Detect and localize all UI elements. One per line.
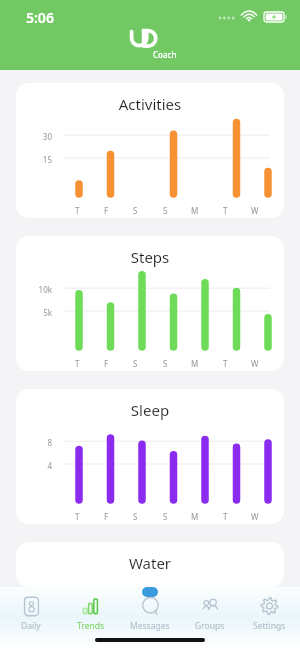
staticText: 30 — [30, 131, 52, 142]
staticText: F — [104, 205, 109, 216]
staticText: S — [133, 511, 138, 522]
staticText: T — [75, 511, 80, 522]
button[interactable]: Sleep — [16, 389, 284, 524]
staticText: Daily — [21, 620, 41, 632]
staticText: M — [191, 358, 199, 369]
staticText: W — [251, 205, 259, 216]
staticText: T — [223, 511, 228, 522]
staticText: F — [104, 358, 109, 369]
staticText: 8 — [30, 437, 52, 448]
staticText: F — [104, 511, 109, 522]
button[interactable]: Settings — [240, 594, 298, 632]
staticText: T — [75, 358, 80, 369]
staticText: Coach — [153, 49, 177, 60]
staticText: 4 — [30, 460, 52, 471]
staticText: S — [163, 205, 168, 216]
staticText: Sleep — [16, 400, 284, 420]
staticText: Settings — [253, 620, 286, 632]
other: Trends — [80, 596, 101, 617]
staticText: Water — [16, 553, 284, 573]
staticText: T — [75, 205, 80, 216]
staticText: Trends — [77, 620, 104, 632]
staticText: S — [133, 358, 138, 369]
staticText: T — [223, 358, 228, 369]
other: Settings — [259, 596, 280, 617]
button[interactable]: Trends — [61, 594, 119, 632]
staticText: 15 — [30, 154, 52, 165]
staticText: S — [163, 358, 168, 369]
button[interactable]: Water — [16, 542, 284, 587]
staticText: 5:06 — [26, 8, 54, 27]
other: Groups — [200, 596, 221, 617]
button[interactable]: Messages — [121, 594, 179, 632]
button[interactable]: Activities — [16, 83, 284, 218]
staticText: 5k — [30, 307, 52, 318]
staticText: S — [133, 205, 138, 216]
staticText: Messages — [130, 620, 170, 632]
staticText: S — [163, 511, 168, 522]
button[interactable]: Daily — [2, 594, 60, 632]
staticText: W — [251, 358, 259, 369]
staticText: M — [191, 511, 199, 522]
staticText: Activities — [16, 94, 284, 114]
other: Daily — [21, 596, 42, 617]
staticText: Groups — [195, 620, 225, 632]
button[interactable]: Groups — [181, 594, 239, 632]
staticText: W — [251, 511, 259, 522]
other: Messages — [140, 596, 161, 617]
staticText: 10k — [30, 284, 52, 295]
button[interactable]: Steps — [16, 236, 284, 371]
staticText: M — [191, 205, 199, 216]
staticText: Steps — [16, 247, 284, 267]
staticText: T — [223, 205, 228, 216]
